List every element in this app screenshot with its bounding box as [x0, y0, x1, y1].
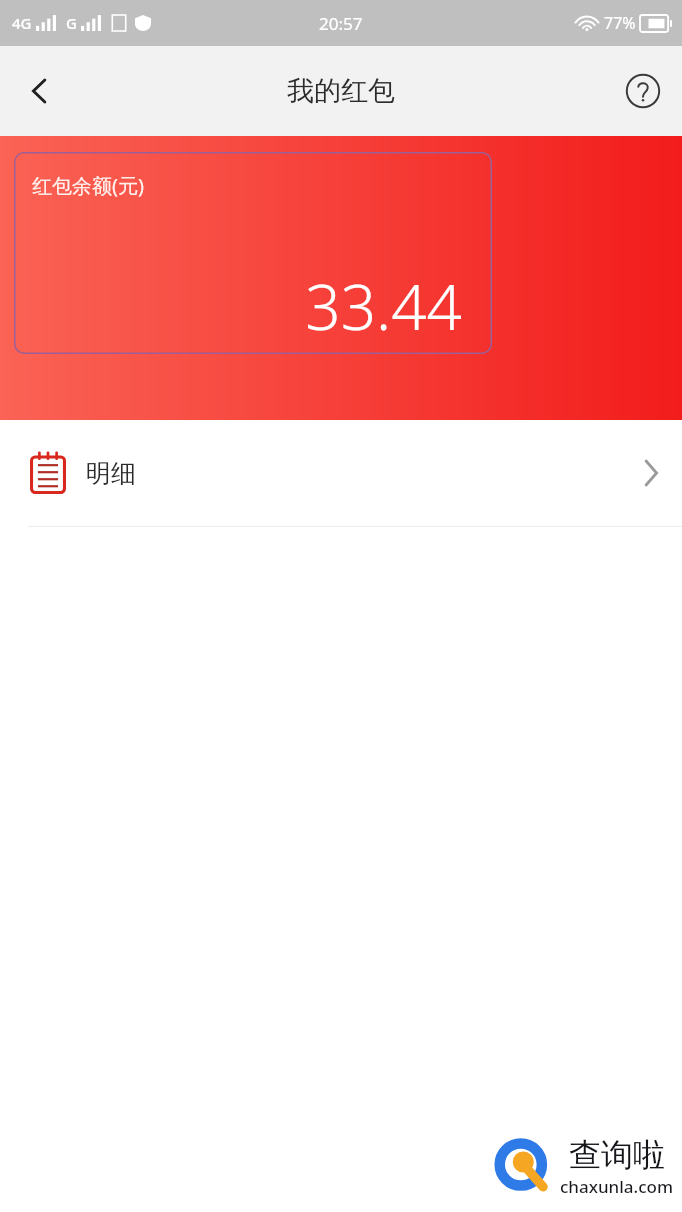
staticText: 查询啦: [569, 1135, 665, 1175]
button[interactable]: Help: [612, 60, 674, 122]
staticText: 77%: [604, 12, 636, 34]
staticText: chaxunla.com: [560, 1175, 674, 1198]
button[interactable]: 红包余额(元): [14, 152, 492, 354]
button[interactable]: 明细: [0, 420, 682, 526]
staticText: 明细: [86, 458, 136, 489]
staticText: 33.44: [305, 264, 462, 348]
staticText: 红包余额(元): [32, 172, 144, 199]
button[interactable]: Back: [10, 61, 70, 121]
staticText: 我的红包: [287, 74, 395, 108]
staticText: 4G: [12, 13, 32, 33]
staticText: 20:57: [319, 12, 363, 35]
staticText: G: [66, 13, 77, 33]
